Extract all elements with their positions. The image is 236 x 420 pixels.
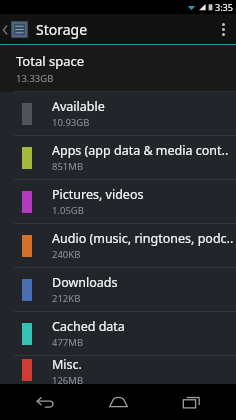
staticText: 13.33GB xyxy=(16,72,54,85)
staticText: 126MB xyxy=(52,374,84,384)
staticText: Audio (music, ringtones, podc.. xyxy=(52,230,234,247)
staticText: 10.93GB xyxy=(52,116,90,129)
button[interactable]: More options xyxy=(210,14,236,44)
button[interactable]: Cached data xyxy=(0,312,236,355)
staticText: Misc. xyxy=(52,356,82,373)
button[interactable]: Available xyxy=(0,92,236,135)
staticText: 240KB xyxy=(52,248,81,261)
staticText: 1.05GB xyxy=(52,204,84,217)
button[interactable]: Pictures, videos xyxy=(0,180,236,223)
staticText: Downloads xyxy=(52,274,118,291)
staticText: 3:35 xyxy=(215,1,233,13)
staticText: Cached data xyxy=(52,318,125,335)
button[interactable]: Home xyxy=(90,384,146,420)
staticText: Total space xyxy=(16,52,84,70)
button[interactable]: Audio (music, ringtones, podc.. xyxy=(0,224,236,267)
button[interactable]: Misc. xyxy=(0,356,236,384)
button[interactable]: Downloads xyxy=(0,268,236,311)
staticText: Pictures, videos xyxy=(52,186,144,203)
button[interactable]: Back xyxy=(17,384,73,420)
button[interactable]: Navigate up xyxy=(0,21,30,38)
staticText: 212KB xyxy=(52,292,81,305)
button[interactable]: Recent apps xyxy=(163,384,219,420)
staticText: 851MB xyxy=(52,160,84,173)
staticText: Apps (app data & media cont.. xyxy=(52,142,229,159)
staticText: Available xyxy=(52,98,105,115)
staticText: Storage xyxy=(36,20,88,39)
staticText: 477MB xyxy=(52,336,84,349)
button[interactable]: Apps (app data & media cont.. xyxy=(0,136,236,179)
